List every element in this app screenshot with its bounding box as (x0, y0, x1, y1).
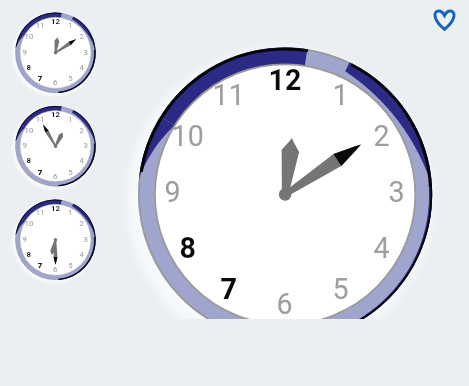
button[interactable]: Favorite (431, 5, 458, 32)
